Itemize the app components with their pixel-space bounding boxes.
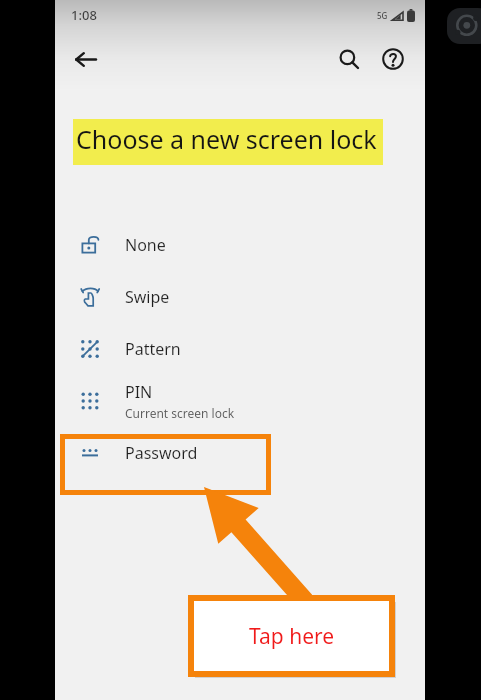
staticText: Tap here bbox=[249, 622, 335, 651]
staticText: Pattern bbox=[125, 338, 181, 360]
button[interactable]: Help bbox=[371, 37, 415, 81]
button[interactable]: Back bbox=[63, 37, 107, 81]
button[interactable]: None bbox=[55, 219, 425, 271]
staticText: Swipe bbox=[125, 286, 170, 308]
button[interactable]: Tap here bbox=[191, 598, 392, 674]
button[interactable]: Search bbox=[327, 37, 371, 81]
staticText: None bbox=[125, 234, 166, 256]
staticText: Current screen lock bbox=[125, 405, 235, 421]
staticText: 1:08 bbox=[71, 6, 97, 24]
button[interactable]: PIN bbox=[55, 375, 425, 427]
other: Camera bbox=[447, 8, 481, 44]
staticText: Choose a new screen lock bbox=[76, 122, 377, 156]
staticText: PIN bbox=[125, 381, 153, 403]
button[interactable]: Password bbox=[55, 427, 425, 479]
button[interactable]: Swipe bbox=[55, 271, 425, 323]
staticText: 5G bbox=[377, 10, 388, 21]
button[interactable]: Pattern bbox=[55, 323, 425, 375]
staticText: Password bbox=[125, 442, 198, 464]
